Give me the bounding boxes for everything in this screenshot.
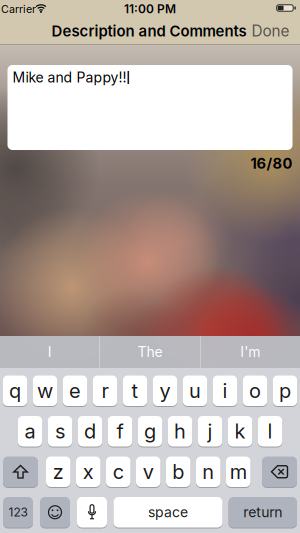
- staticText: space: [148, 504, 188, 521]
- button[interactable]: d: [78, 416, 102, 446]
- staticText: f: [116, 419, 123, 443]
- button[interactable]: I: [0, 336, 99, 368]
- staticText: t: [131, 379, 138, 403]
- staticText: return: [243, 504, 282, 521]
- button[interactable]: m: [226, 456, 250, 487]
- staticText: a: [24, 419, 35, 443]
- button[interactable]: k: [228, 416, 252, 446]
- staticText: Mike and Pappy!!: [12, 69, 126, 86]
- staticText: 123: [8, 505, 27, 519]
- button[interactable]: s: [48, 416, 72, 446]
- button[interactable]: b: [166, 456, 190, 487]
- staticText: y: [159, 379, 170, 403]
- staticText: b: [172, 460, 184, 484]
- staticText: p: [279, 379, 291, 403]
- staticText: Carrier: [1, 2, 36, 15]
- staticText: I'm: [240, 343, 260, 360]
- staticText: o: [249, 379, 261, 403]
- button[interactable]: z: [46, 456, 70, 487]
- staticText: The: [137, 343, 162, 360]
- button[interactable]: x: [76, 456, 100, 487]
- button[interactable]: [77, 497, 107, 527]
- button[interactable]: [262, 456, 297, 487]
- button[interactable]: j: [198, 416, 222, 446]
- staticText: v: [143, 460, 154, 484]
- staticText: h: [174, 419, 186, 443]
- staticText: r: [101, 379, 108, 403]
- button[interactable]: g: [138, 416, 162, 446]
- staticText: e: [69, 379, 81, 403]
- staticText: m: [230, 460, 247, 484]
- button[interactable]: t: [123, 375, 147, 406]
- button[interactable]: Mike and Pappy!!: [7, 65, 292, 150]
- staticText: c: [113, 460, 124, 484]
- button[interactable]: o: [243, 375, 267, 406]
- button[interactable]: The: [100, 336, 200, 368]
- staticText: n: [202, 460, 214, 484]
- staticText: I: [48, 343, 52, 360]
- button[interactable]: y: [153, 375, 177, 406]
- staticText: g: [144, 419, 156, 443]
- button[interactable]: h: [168, 416, 192, 446]
- button[interactable]: n: [196, 456, 220, 487]
- staticText: 11:00 PM: [124, 2, 176, 16]
- button[interactable]: e: [63, 375, 87, 406]
- button[interactable]: f: [108, 416, 132, 446]
- staticText: j: [207, 419, 212, 443]
- staticText: s: [55, 419, 65, 443]
- button[interactable]: u: [183, 375, 207, 406]
- button[interactable]: p: [273, 375, 297, 406]
- staticText: Done: [251, 22, 289, 40]
- staticText: x: [83, 460, 94, 484]
- button[interactable]: space: [113, 497, 222, 527]
- button[interactable]: [40, 497, 70, 527]
- button[interactable]: i: [213, 375, 237, 406]
- staticText: i: [222, 379, 227, 403]
- button[interactable]: v: [136, 456, 160, 487]
- staticText: 16/80: [250, 155, 292, 172]
- staticText: q: [9, 379, 21, 403]
- staticText: u: [189, 379, 201, 403]
- button[interactable]: 123: [3, 497, 33, 527]
- staticText: d: [84, 419, 96, 443]
- button[interactable]: return: [228, 497, 297, 527]
- button[interactable]: r: [93, 375, 117, 406]
- staticText: w: [37, 379, 53, 403]
- button[interactable]: Done: [251, 22, 289, 40]
- staticText: k: [234, 419, 245, 443]
- button[interactable]: I'm: [201, 336, 300, 368]
- staticText: z: [53, 460, 64, 484]
- button[interactable]: [3, 456, 38, 487]
- button[interactable]: c: [106, 456, 130, 487]
- staticText: Description and Comments: [51, 22, 246, 40]
- button[interactable]: q: [3, 375, 27, 406]
- button[interactable]: l: [258, 416, 282, 446]
- button[interactable]: a: [18, 416, 42, 446]
- button[interactable]: w: [33, 375, 57, 406]
- staticText: l: [267, 419, 272, 443]
